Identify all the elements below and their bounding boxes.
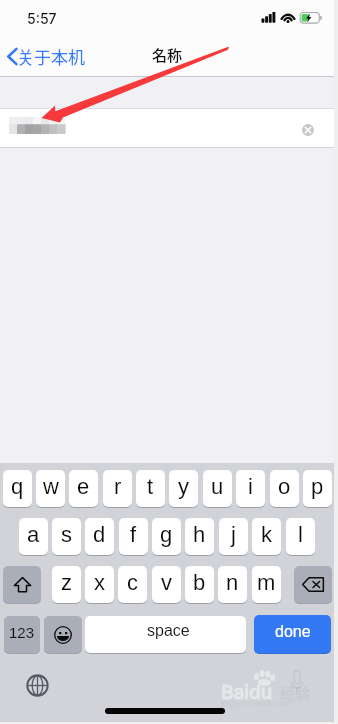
- button[interactable]: v: [152, 566, 181, 603]
- button[interactable]: g: [152, 518, 181, 555]
- button[interactable]: Clear text: [302, 124, 314, 136]
- staticText: o: [278, 474, 291, 499]
- staticText: t: [147, 474, 154, 499]
- button[interactable]: space: [85, 616, 246, 653]
- button[interactable]: Backspace: [294, 566, 332, 603]
- other: Emoji keyboard: [54, 626, 72, 644]
- button[interactable]: w: [36, 470, 65, 507]
- button[interactable]: b: [185, 566, 214, 603]
- button[interactable]: i: [236, 470, 265, 507]
- button[interactable]: x: [85, 566, 114, 603]
- button[interactable]: Emoji keyboard: [44, 616, 82, 653]
- button[interactable]: Clear text: [0, 108, 334, 148]
- other: Shift: [13, 576, 32, 594]
- staticText: s: [61, 522, 72, 547]
- other: Backspace: [302, 577, 324, 592]
- button[interactable]: l: [286, 518, 315, 555]
- button[interactable]: t: [136, 470, 165, 507]
- staticText: 经验: [280, 682, 311, 704]
- button[interactable]: Shift: [3, 566, 41, 603]
- staticText: Baidu: [221, 681, 273, 704]
- staticText: n: [226, 570, 239, 595]
- button[interactable]: a: [19, 518, 48, 555]
- button[interactable]: s: [52, 518, 81, 555]
- staticText: space: [147, 622, 190, 640]
- button[interactable]: 关于本机: [5, 36, 122, 77]
- staticText: a: [27, 522, 40, 547]
- staticText: h: [193, 522, 206, 547]
- staticText: y: [178, 474, 189, 499]
- staticText: m: [257, 570, 276, 595]
- button[interactable]: n: [218, 566, 247, 603]
- button[interactable]: m: [252, 566, 281, 603]
- staticText: v: [161, 570, 172, 595]
- button[interactable]: q: [3, 470, 32, 507]
- button[interactable]: f: [119, 518, 148, 555]
- button[interactable]: o: [270, 470, 299, 507]
- staticText: w: [43, 474, 59, 499]
- staticText: g: [160, 522, 173, 547]
- staticText: jingyan.baidu.com: [221, 698, 294, 708]
- button[interactable]: j: [219, 518, 248, 555]
- staticText: e: [77, 474, 90, 499]
- staticText: i: [248, 474, 253, 499]
- staticText: b: [193, 570, 206, 595]
- staticText: u: [211, 474, 224, 499]
- staticText: r: [114, 474, 122, 499]
- button[interactable]: u: [203, 470, 232, 507]
- button[interactable]: p: [303, 470, 332, 507]
- staticText: f: [130, 522, 137, 547]
- button[interactable]: Switch keyboard language: [26, 674, 49, 697]
- button[interactable]: h: [185, 518, 214, 555]
- staticText: z: [61, 570, 72, 595]
- button[interactable]: r: [103, 470, 132, 507]
- staticText: q: [11, 474, 24, 499]
- button[interactable]: c: [118, 566, 147, 603]
- staticText: k: [261, 522, 272, 547]
- staticText: 名称: [152, 44, 183, 66]
- staticText: j: [231, 522, 236, 547]
- staticText: l: [298, 522, 303, 547]
- staticText: done: [275, 623, 311, 641]
- staticText: 123: [9, 624, 35, 641]
- button[interactable]: k: [252, 518, 281, 555]
- staticText: p: [311, 474, 324, 499]
- staticText: c: [127, 570, 138, 595]
- button[interactable]: done: [254, 615, 331, 653]
- staticText: d: [93, 522, 106, 547]
- staticText: 关于本机: [17, 44, 85, 69]
- button[interactable]: 123: [4, 616, 40, 653]
- staticText: x: [94, 570, 105, 595]
- button[interactable]: e: [69, 470, 98, 507]
- staticText: 5:57: [27, 10, 57, 27]
- button[interactable]: z: [52, 566, 81, 603]
- button[interactable]: d: [85, 518, 114, 555]
- button[interactable]: y: [169, 470, 198, 507]
